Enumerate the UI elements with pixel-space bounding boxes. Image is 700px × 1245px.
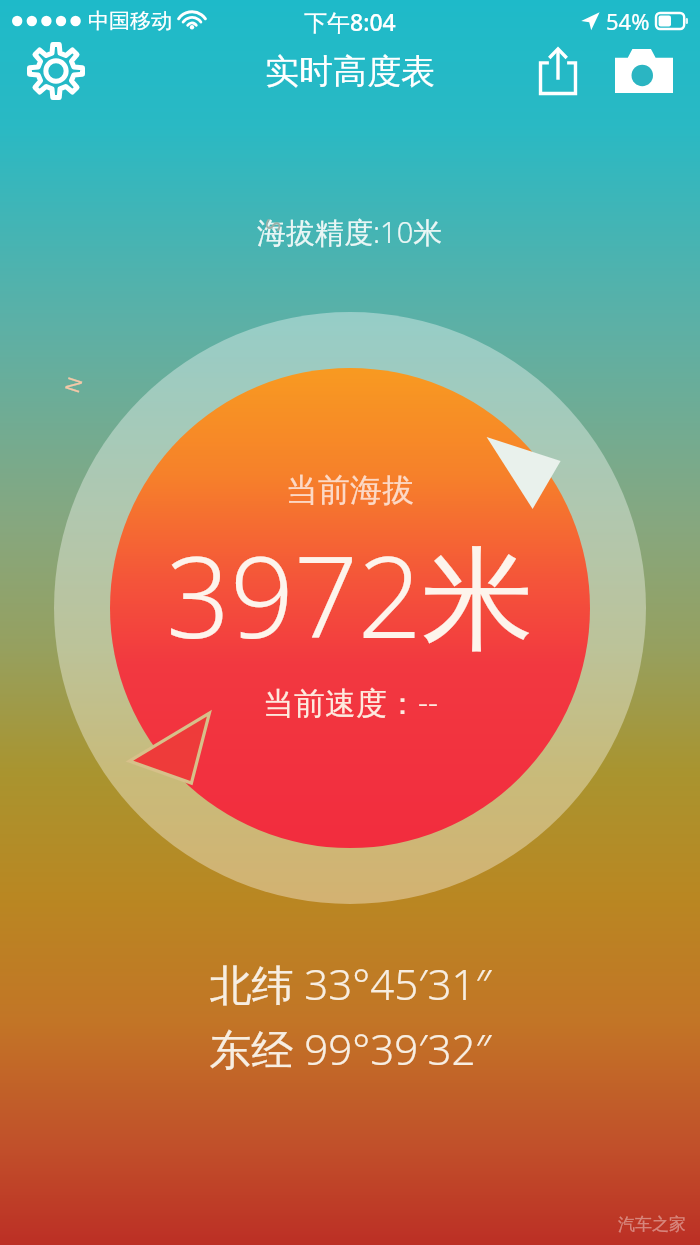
button[interactable]: Settings: [22, 37, 90, 105]
staticText: 汽车之家: [618, 1214, 686, 1235]
button[interactable]: Camera: [612, 39, 676, 103]
staticText: 中国移动: [88, 8, 172, 34]
staticText: 实时高度表: [265, 50, 435, 93]
staticText: 北纬 33°45′31″: [209, 955, 492, 1012]
staticText: 当前海拔: [286, 470, 414, 510]
staticText: 54%: [606, 6, 650, 36]
staticText: 3972米: [166, 518, 534, 671]
staticText: 当前速度：--: [263, 681, 438, 723]
staticText: S: [259, 216, 288, 235]
staticText: N: [59, 374, 89, 397]
staticText: 东经 99°39′32″: [209, 1020, 492, 1077]
button[interactable]: Share: [528, 41, 588, 101]
staticText: 下午8:04: [304, 6, 396, 37]
staticText: 海拔精度:10米: [257, 212, 443, 252]
